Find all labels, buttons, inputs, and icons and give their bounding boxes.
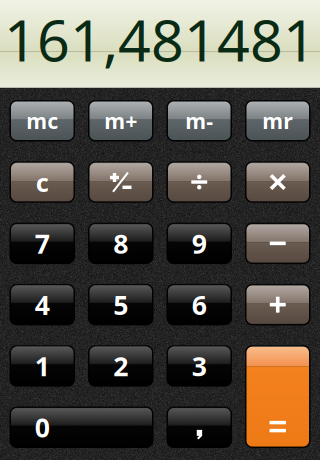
button[interactable]: 7 <box>10 223 74 263</box>
button[interactable]: 8 <box>89 223 153 263</box>
button[interactable]: Add <box>246 285 310 325</box>
staticText: 3 <box>192 348 207 384</box>
button[interactable]: Equals <box>246 346 310 447</box>
button[interactable]: m- <box>167 101 231 141</box>
staticText: 8 <box>113 226 128 261</box>
button[interactable]: 9 <box>167 223 231 263</box>
staticText: 9 <box>192 226 207 261</box>
staticText: 161,481481 <box>4 1 316 77</box>
staticText: 7 <box>35 226 50 261</box>
button[interactable]: mc <box>10 101 74 141</box>
button[interactable]: 4 <box>10 285 74 325</box>
button[interactable]: 5 <box>89 285 153 325</box>
button[interactable]: 2 <box>89 346 153 386</box>
button[interactable]: m+ <box>89 101 153 141</box>
staticText: c <box>36 165 49 199</box>
button[interactable]: mr <box>246 101 310 141</box>
staticText: 0 <box>35 409 50 445</box>
button[interactable]: Multiply <box>246 162 310 202</box>
staticText: mr <box>262 107 293 135</box>
button[interactable]: Plus or minus <box>89 162 153 202</box>
button[interactable]: c <box>10 162 74 202</box>
staticText: m- <box>185 107 213 135</box>
button[interactable]: Subtract <box>246 223 310 263</box>
button[interactable]: 0 <box>10 407 153 447</box>
button[interactable]: Divide <box>167 162 231 202</box>
staticText: 1 <box>35 348 50 384</box>
staticText: m+ <box>104 107 137 135</box>
button[interactable]: 3 <box>167 346 231 386</box>
button[interactable]: 1 <box>10 346 74 386</box>
staticText: 5 <box>113 287 128 322</box>
staticText: 4 <box>35 287 50 322</box>
staticText: mc <box>26 107 58 135</box>
staticText: 6 <box>192 287 207 322</box>
staticText: 2 <box>113 348 128 384</box>
button[interactable]: Decimal separator <box>167 407 231 447</box>
button[interactable]: 6 <box>167 285 231 325</box>
